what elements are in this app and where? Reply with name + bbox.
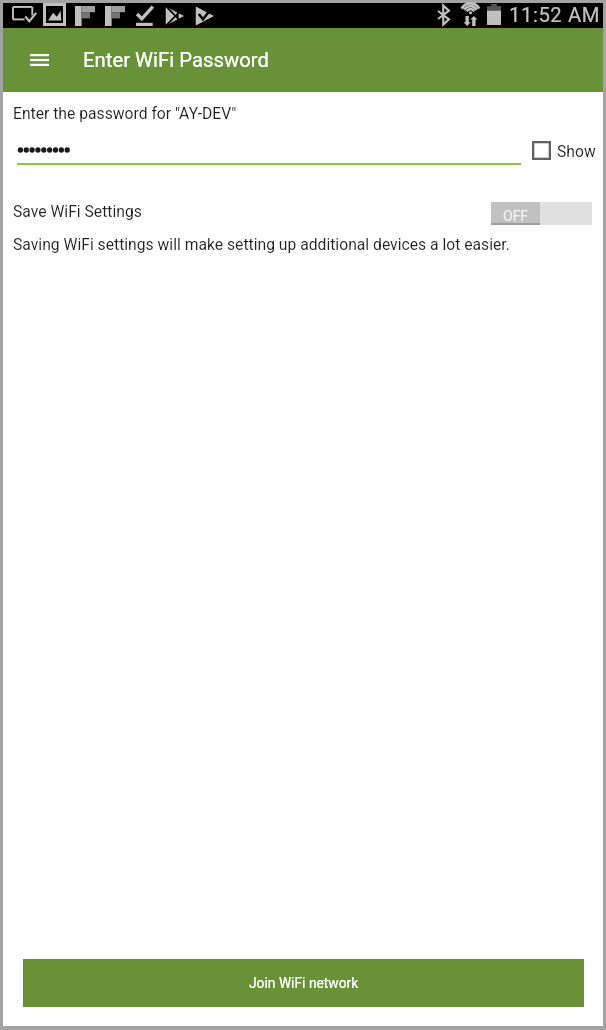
staticText: OFF: [503, 208, 529, 224]
button[interactable]: Save WiFi Settings off: [491, 202, 592, 225]
staticText: Saving WiFi settings will make setting u…: [13, 235, 510, 253]
button[interactable]: Join WiFi network: [23, 959, 584, 1007]
staticText: Save WiFi Settings: [13, 202, 142, 220]
staticText: Enter the password for "AY-DEV": [13, 104, 237, 122]
staticText: Enter WiFi Password: [83, 48, 269, 72]
staticText: Join WiFi network: [249, 975, 359, 991]
staticText: 11:52 AM: [509, 3, 600, 27]
staticText: Show: [557, 142, 596, 160]
button[interactable]: Open navigation menu: [21, 42, 57, 78]
button[interactable]: Show: [531, 140, 596, 161]
